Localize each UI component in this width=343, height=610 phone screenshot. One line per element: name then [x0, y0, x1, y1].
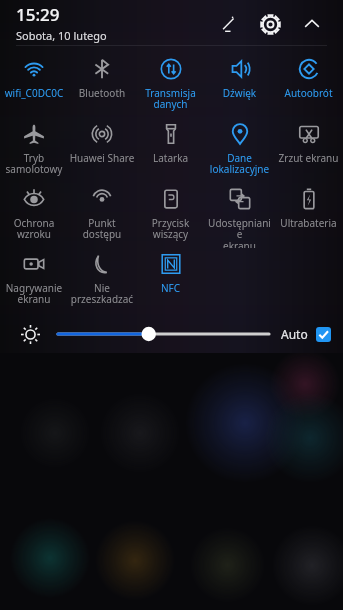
- button[interactable]: Bluetooth: [68, 53, 136, 118]
- button[interactable]: Latarka: [136, 118, 205, 183]
- button[interactable]: wifi_C0DC0C: [0, 53, 68, 118]
- staticText: 15:29: [16, 3, 60, 26]
- button[interactable]: Nagrywanie ekranu: [0, 248, 68, 313]
- staticText: Auto: [281, 326, 308, 342]
- staticText: Przycisk wiszący: [137, 216, 204, 241]
- button[interactable]: Dźwięk: [205, 53, 274, 118]
- button[interactable]: Autoobrót: [274, 53, 343, 118]
- button[interactable]: Brightness slider: [58, 321, 271, 347]
- button[interactable]: Huawei Share: [68, 118, 136, 183]
- staticText: Latarka: [137, 151, 204, 165]
- button[interactable]: Transmisja danych: [136, 53, 205, 118]
- staticText: Nie przeszkadzać: [69, 281, 135, 306]
- button[interactable]: Ultrabateria: [274, 183, 343, 248]
- button[interactable]: Settings: [253, 7, 287, 41]
- button[interactable]: Punkt dostępu: [68, 183, 136, 248]
- button[interactable]: Tryb samolotowy: [0, 118, 68, 183]
- staticText: wifi_C0DC0C: [1, 86, 67, 100]
- staticText: Dane lokalizacyjne: [206, 151, 273, 176]
- staticText: Udostępnianie ekranu: [206, 216, 273, 248]
- staticText: Huawei Share: [69, 151, 135, 165]
- button[interactable]: Zrzut ekranu: [274, 118, 343, 183]
- button[interactable]: NFC: [136, 248, 205, 313]
- button[interactable]: Nie przeszkadzać: [68, 248, 136, 313]
- staticText: Autoobrót: [275, 86, 342, 100]
- staticText: Ochrona wzroku: [1, 216, 67, 241]
- button[interactable]: Collapse: [295, 7, 329, 41]
- button[interactable]: Udostępnianie ekranu: [205, 183, 274, 248]
- staticText: Zrzut ekranu: [275, 151, 342, 165]
- staticText: NFC: [137, 281, 204, 295]
- staticText: Ultrabateria: [275, 216, 342, 230]
- staticText: Sobota, 10 lutego: [16, 28, 107, 43]
- staticText: Bluetooth: [69, 86, 135, 100]
- staticText: Transmisja danych: [137, 86, 204, 111]
- staticText: Nagrywanie ekranu: [1, 281, 67, 306]
- button[interactable]: Brightness: [16, 320, 44, 348]
- staticText: Punkt dostępu: [69, 216, 135, 241]
- button[interactable]: Dane lokalizacyjne: [205, 118, 274, 183]
- button[interactable]: Przycisk wiszący: [136, 183, 205, 248]
- button[interactable]: Edit: [211, 7, 245, 41]
- button[interactable]: Ochrona wzroku: [0, 183, 68, 248]
- staticText: Tryb samolotowy: [1, 151, 67, 176]
- button[interactable]: Auto: [281, 326, 331, 342]
- staticText: Dźwięk: [206, 86, 273, 100]
